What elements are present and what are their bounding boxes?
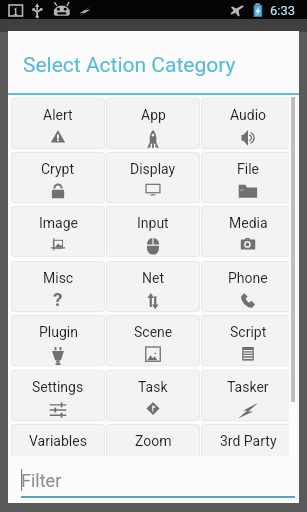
staticText: Display (130, 161, 176, 177)
staticText: Image (39, 215, 78, 231)
button[interactable]: Scene (106, 315, 200, 366)
button[interactable]: Crypt (11, 152, 105, 203)
button[interactable]: Image (11, 206, 105, 257)
button[interactable]: 3rd Party (201, 424, 289, 456)
staticText: Media (229, 215, 268, 231)
staticText: Phone (228, 270, 268, 286)
button[interactable]: Variables (11, 424, 105, 456)
staticText: File (237, 161, 259, 177)
staticText: Crypt (41, 161, 75, 177)
button[interactable]: Tasker (201, 370, 289, 421)
button[interactable]: Task (106, 370, 200, 421)
button[interactable]: Media (201, 206, 289, 257)
staticText: Variables (29, 433, 87, 449)
staticText: 6:33 (270, 3, 296, 18)
staticText: App (141, 107, 166, 123)
button[interactable]: Phone (201, 261, 289, 312)
button[interactable]: Script (201, 315, 289, 366)
button[interactable]: Misc (11, 261, 105, 312)
button[interactable]: Alert (11, 98, 105, 149)
staticText: Audio (230, 107, 267, 123)
staticText: ? (53, 288, 63, 310)
staticText: Script (230, 324, 267, 340)
button[interactable]: Display (106, 152, 200, 203)
staticText: Net (142, 270, 164, 286)
button[interactable]: App (106, 98, 200, 149)
staticText: Settings (32, 379, 84, 395)
button[interactable]: Audio (201, 98, 289, 149)
staticText: Input (137, 215, 169, 231)
staticText: Alert (43, 107, 73, 123)
button[interactable]: Plugin (11, 315, 105, 366)
staticText: 3rd Party (220, 433, 277, 449)
staticText: Task (138, 379, 168, 395)
staticText: Plugin (39, 324, 78, 340)
button[interactable]: Settings (11, 370, 105, 421)
staticText: Select Action Category (23, 53, 236, 78)
button[interactable]: Net (106, 261, 200, 312)
staticText: Misc (43, 270, 74, 286)
button[interactable]: File (201, 152, 289, 203)
button[interactable]: Input (106, 206, 200, 257)
staticText: Scene (134, 324, 173, 340)
staticText: Filter (21, 470, 62, 491)
staticText: Zoom (135, 433, 172, 449)
button[interactable]: Zoom (106, 424, 200, 456)
staticText: Tasker (227, 379, 269, 395)
